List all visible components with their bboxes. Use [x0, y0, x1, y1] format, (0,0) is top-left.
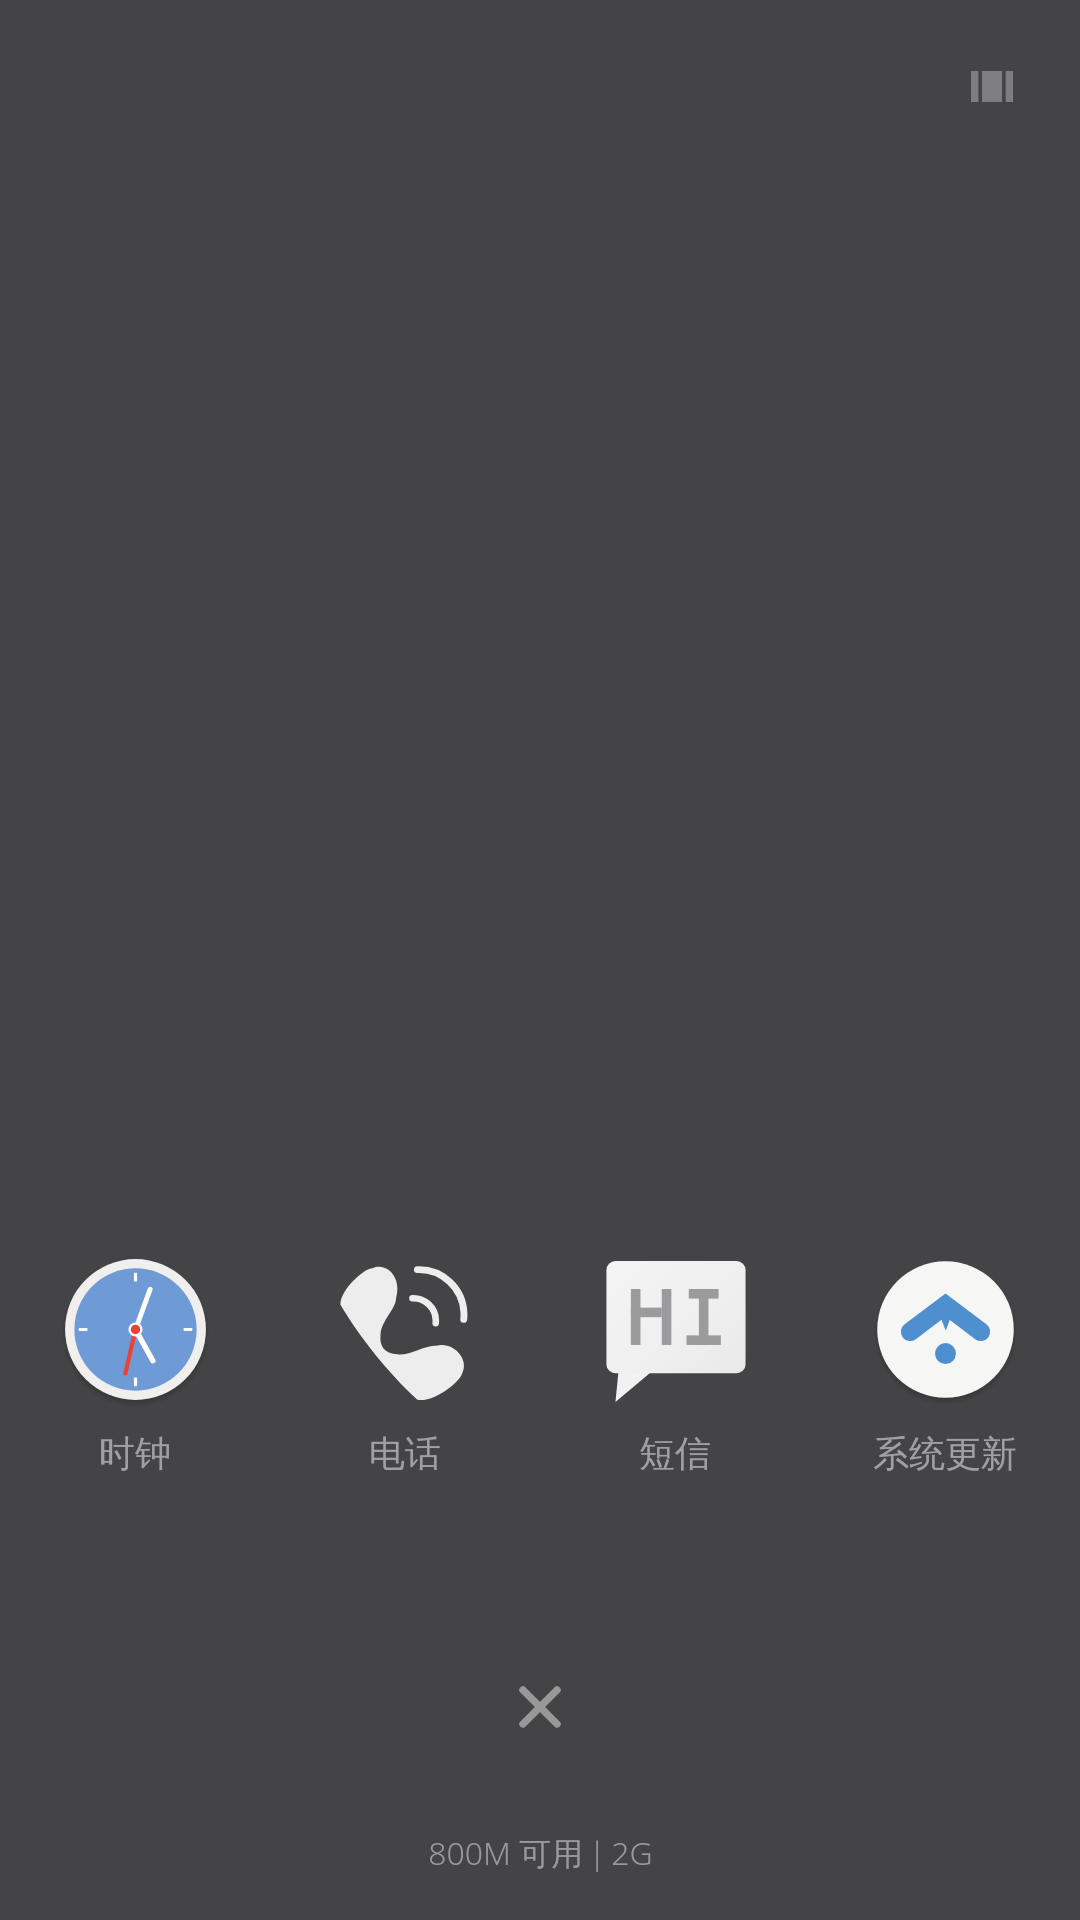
button[interactable]: 系统更新 — [810, 1258, 1080, 1476]
button[interactable]: 电话 — [270, 1258, 540, 1476]
button[interactable]: 时钟 — [0, 1258, 270, 1476]
button[interactable]: Close all apps — [480, 1647, 600, 1767]
staticText: 时钟 — [99, 1431, 171, 1476]
staticText: 系统更新 — [873, 1431, 1017, 1476]
button[interactable]: 短信 — [540, 1258, 810, 1476]
staticText: 短信 — [639, 1431, 711, 1476]
button[interactable]: Switch recents layout — [947, 41, 1037, 131]
staticText: 电话 — [369, 1431, 441, 1476]
staticText: 800M 可用 | 2G — [428, 1831, 653, 1875]
